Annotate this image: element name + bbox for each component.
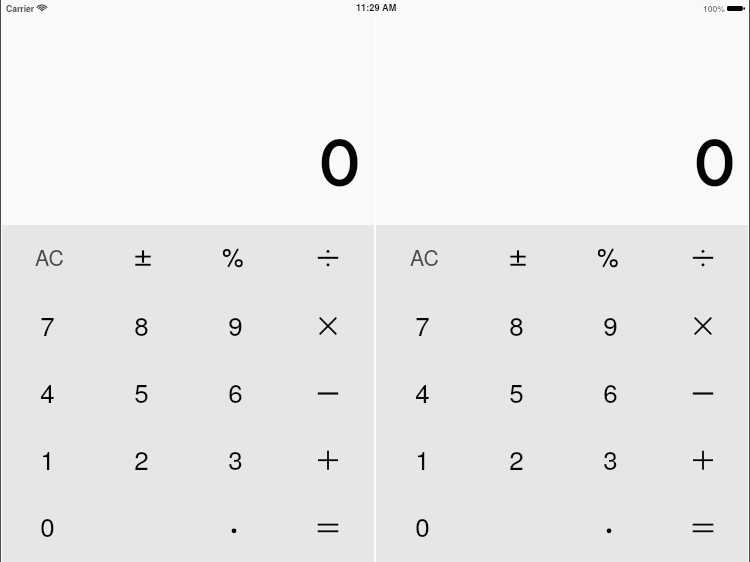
staticText: AC bbox=[35, 242, 64, 273]
button[interactable]: Decimal point bbox=[562, 495, 656, 562]
staticText: 6 bbox=[603, 373, 618, 410]
button[interactable]: Equals bbox=[656, 495, 750, 562]
staticText: 0 bbox=[40, 507, 55, 544]
button[interactable]: 6 bbox=[562, 361, 656, 428]
staticText: 4 bbox=[40, 373, 55, 410]
staticText: 9 bbox=[228, 306, 243, 343]
staticText: 5 bbox=[509, 373, 524, 410]
button[interactable]: 2 bbox=[93, 428, 187, 495]
button[interactable]: 0 bbox=[0, 495, 93, 562]
button[interactable]: Multiply bbox=[656, 293, 750, 361]
button[interactable]: 1 bbox=[0, 428, 93, 495]
button[interactable]: 7 bbox=[375, 293, 468, 361]
staticText: 2 bbox=[509, 440, 524, 477]
button[interactable]: Toggle sign bbox=[468, 225, 562, 293]
button[interactable]: 5 bbox=[93, 361, 187, 428]
staticText: 11:29 AM bbox=[356, 1, 397, 14]
button[interactable]: 5 bbox=[468, 361, 562, 428]
button[interactable]: Divide bbox=[281, 225, 375, 293]
staticText: 6 bbox=[228, 373, 243, 410]
button[interactable]: 8 bbox=[93, 293, 187, 361]
staticText: 7 bbox=[415, 306, 430, 343]
staticText: 0 bbox=[319, 115, 361, 210]
staticText: AC bbox=[410, 242, 439, 273]
staticText: 9 bbox=[603, 306, 618, 343]
staticText: 3 bbox=[603, 440, 618, 477]
button[interactable]: 6 bbox=[187, 361, 281, 428]
staticText: 3 bbox=[228, 440, 243, 477]
button[interactable]: 9 bbox=[187, 293, 281, 361]
button[interactable]: Percent bbox=[187, 225, 281, 293]
button[interactable]: Multiply bbox=[281, 293, 375, 361]
button[interactable]: AC bbox=[375, 225, 468, 293]
button[interactable]: Equals bbox=[281, 495, 375, 562]
staticText: 5 bbox=[134, 373, 149, 410]
button[interactable]: 9 bbox=[562, 293, 656, 361]
button[interactable]: Add bbox=[281, 428, 375, 495]
button[interactable]: 0 bbox=[375, 495, 468, 562]
button[interactable]: 8 bbox=[468, 293, 562, 361]
button[interactable]: 2 bbox=[468, 428, 562, 495]
staticText: Carrier bbox=[6, 2, 35, 14]
staticText: 100% bbox=[703, 2, 725, 14]
button[interactable]: 3 bbox=[187, 428, 281, 495]
button[interactable]: Add bbox=[656, 428, 750, 495]
button[interactable]: Toggle sign bbox=[93, 225, 187, 293]
button[interactable]: Subtract bbox=[656, 361, 750, 428]
button[interactable]: 4 bbox=[0, 361, 93, 428]
staticText: 1 bbox=[415, 440, 430, 477]
button[interactable]: Subtract bbox=[281, 361, 375, 428]
button[interactable]: 7 bbox=[0, 293, 93, 361]
staticText: 0 bbox=[694, 115, 736, 210]
staticText: 2 bbox=[134, 440, 149, 477]
staticText: 7 bbox=[40, 306, 55, 343]
staticText: 0 bbox=[415, 507, 430, 544]
staticText: 1 bbox=[40, 440, 55, 477]
staticText: 8 bbox=[509, 306, 524, 343]
button[interactable]: 3 bbox=[562, 428, 656, 495]
button[interactable]: 4 bbox=[375, 361, 468, 428]
button[interactable]: AC bbox=[0, 225, 93, 293]
staticText: 4 bbox=[415, 373, 430, 410]
staticText: 8 bbox=[134, 306, 149, 343]
button[interactable]: 1 bbox=[375, 428, 468, 495]
button[interactable]: Percent bbox=[562, 225, 656, 293]
button[interactable]: Decimal point bbox=[187, 495, 281, 562]
button[interactable]: Divide bbox=[656, 225, 750, 293]
